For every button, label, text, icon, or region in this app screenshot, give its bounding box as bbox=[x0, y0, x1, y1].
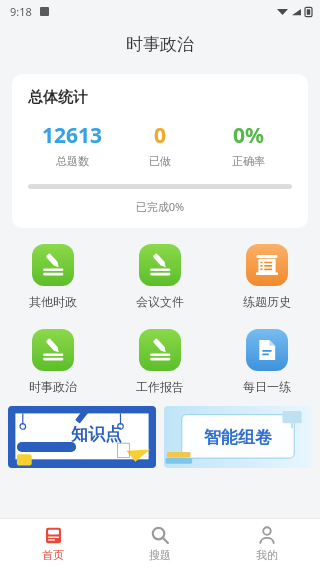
staticText: 9:18 bbox=[10, 4, 32, 19]
staticText: 时事政治 bbox=[29, 379, 77, 394]
button[interactable]: 首页 bbox=[0, 519, 106, 568]
button[interactable]: 练题历史 bbox=[213, 242, 320, 311]
staticText: 总题数 bbox=[56, 154, 89, 168]
staticText: 正确率 bbox=[232, 154, 265, 168]
button[interactable]: 搜题 bbox=[106, 519, 213, 568]
button[interactable]: 其他时政 bbox=[0, 242, 106, 311]
staticText: 已完成0% bbox=[28, 199, 292, 214]
staticText: 搜题 bbox=[149, 548, 171, 562]
button[interactable]: 会议文件 bbox=[106, 242, 213, 311]
staticText: 已做 bbox=[149, 154, 171, 168]
staticText: 0 bbox=[154, 121, 167, 150]
staticText: 我的 bbox=[256, 548, 278, 562]
staticText: 首页 bbox=[42, 548, 64, 562]
button[interactable]: 智能组卷 bbox=[164, 406, 312, 468]
staticText: 智能组卷 bbox=[204, 427, 272, 448]
staticText: 每日一练 bbox=[243, 379, 291, 394]
staticText: 会议文件 bbox=[136, 294, 184, 309]
staticText: 总体统计 bbox=[28, 88, 88, 107]
button[interactable]: 知识点 bbox=[8, 406, 156, 468]
staticText: 知识点 bbox=[71, 424, 122, 445]
button[interactable]: 工作报告 bbox=[106, 327, 213, 396]
button[interactable]: 我的 bbox=[213, 519, 320, 568]
staticText: 其他时政 bbox=[29, 294, 77, 309]
staticText: 练题历史 bbox=[243, 294, 291, 309]
button[interactable]: 每日一练 bbox=[213, 327, 320, 396]
staticText: 时事政治 bbox=[126, 34, 194, 55]
staticText: 0% bbox=[233, 121, 264, 150]
button[interactable]: 时事政治 bbox=[0, 327, 106, 396]
staticText: 工作报告 bbox=[136, 379, 184, 394]
staticText: 12613 bbox=[42, 121, 103, 150]
